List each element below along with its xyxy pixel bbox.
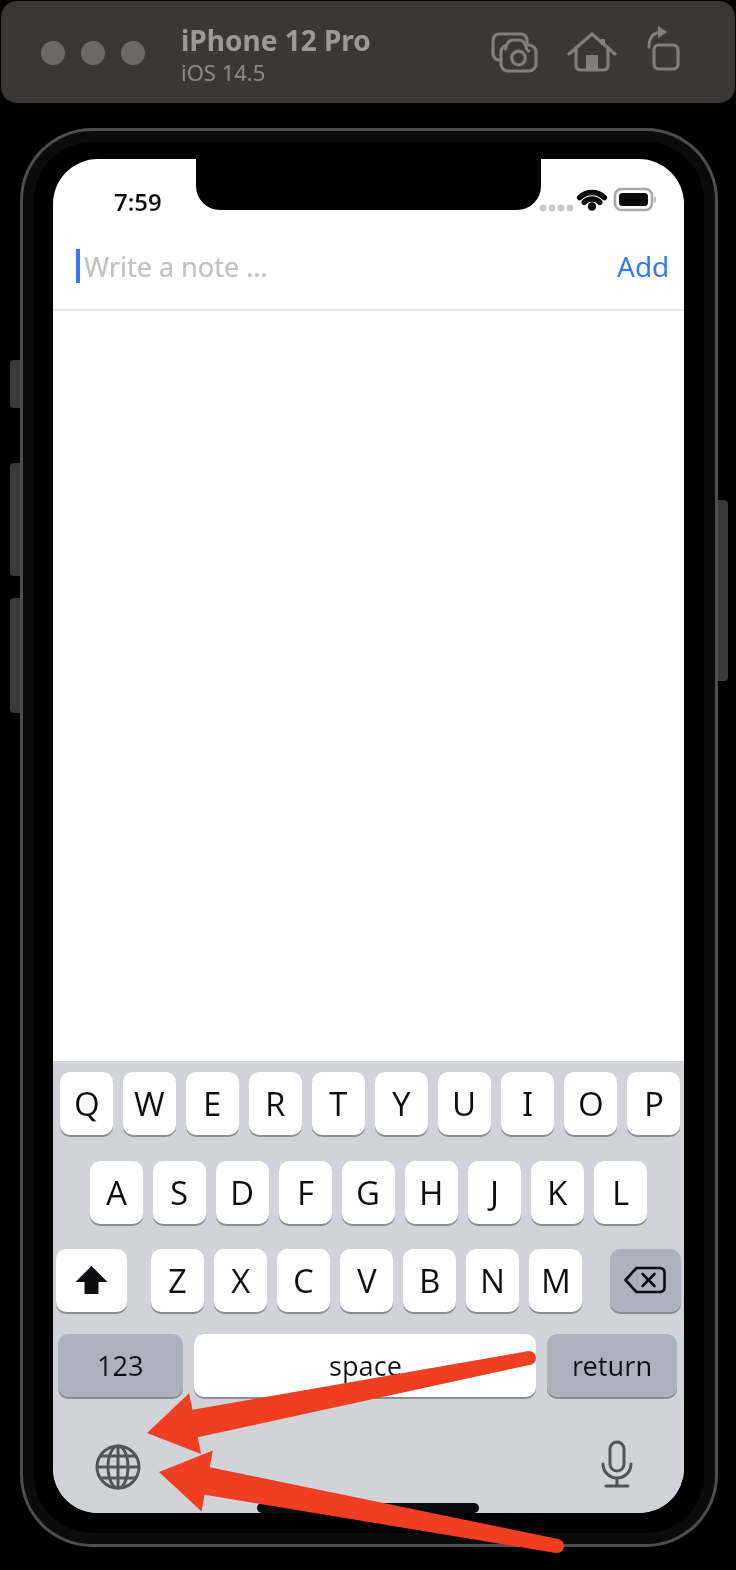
button[interactable]: X — [214, 1249, 267, 1312]
button[interactable]: W — [123, 1072, 176, 1135]
button[interactable] — [610, 1249, 681, 1312]
staticText: D — [230, 1170, 255, 1215]
staticText: 7:59 — [114, 185, 162, 213]
staticText: T — [329, 1081, 348, 1126]
staticText: Z — [168, 1258, 187, 1303]
staticText: return — [572, 1347, 653, 1384]
button[interactable] — [486, 27, 544, 79]
button[interactable] — [643, 27, 687, 79]
staticText: H — [419, 1170, 444, 1215]
button[interactable]: K — [531, 1161, 584, 1224]
staticText: 123 — [97, 1347, 144, 1384]
button[interactable]: N — [466, 1249, 519, 1312]
staticText: Add — [617, 247, 670, 285]
button[interactable]: G — [342, 1161, 395, 1224]
staticText: W — [134, 1081, 165, 1126]
staticText: iPhone 12 Pro — [181, 21, 371, 59]
button[interactable] — [93, 1442, 143, 1492]
button[interactable]: L — [594, 1161, 647, 1224]
button[interactable]: F — [279, 1161, 332, 1224]
staticText: L — [612, 1170, 630, 1215]
button[interactable] — [56, 1249, 127, 1312]
staticText: S — [170, 1170, 189, 1215]
button[interactable]: Y — [375, 1072, 428, 1135]
staticText: C — [293, 1258, 314, 1303]
button[interactable]: C — [277, 1249, 330, 1312]
button[interactable]: R — [249, 1072, 302, 1135]
button[interactable]: Q — [60, 1072, 113, 1135]
button[interactable]: H — [405, 1161, 458, 1224]
staticText: J — [490, 1170, 500, 1215]
staticText: P — [644, 1081, 664, 1126]
staticText: N — [480, 1258, 506, 1303]
staticText: K — [547, 1170, 568, 1215]
staticText: Write a note ... — [84, 248, 268, 285]
staticText: V — [357, 1258, 377, 1303]
staticText: Q — [74, 1081, 100, 1126]
staticText: A — [106, 1170, 128, 1215]
button[interactable]: return — [547, 1334, 677, 1397]
button[interactable]: D — [216, 1161, 269, 1224]
staticText: R — [265, 1081, 286, 1126]
button[interactable]: T — [312, 1072, 365, 1135]
button[interactable]: U — [438, 1072, 491, 1135]
staticText: Y — [392, 1081, 411, 1126]
button[interactable]: I — [501, 1072, 554, 1135]
button[interactable]: S — [153, 1161, 206, 1224]
staticText: X — [231, 1258, 251, 1303]
staticText: F — [297, 1170, 315, 1215]
button[interactable]: A — [90, 1161, 143, 1224]
button[interactable]: P — [627, 1072, 680, 1135]
button[interactable]: E — [186, 1072, 239, 1135]
button[interactable]: O — [564, 1072, 617, 1135]
button[interactable]: 123 — [58, 1334, 183, 1397]
button[interactable]: Z — [151, 1249, 204, 1312]
staticText: O — [578, 1081, 604, 1126]
staticText: M — [541, 1258, 571, 1303]
button[interactable] — [592, 1441, 642, 1491]
staticText: E — [203, 1081, 222, 1126]
button[interactable]: M — [529, 1249, 582, 1312]
staticText: G — [356, 1170, 381, 1215]
staticText: I — [522, 1081, 534, 1126]
button[interactable]: Add — [370, 245, 670, 287]
staticText: space — [329, 1347, 402, 1384]
staticText: iOS 14.5 — [181, 57, 266, 87]
staticText: B — [419, 1258, 441, 1303]
button[interactable] — [564, 27, 616, 79]
button[interactable]: V — [340, 1249, 393, 1312]
button[interactable]: J — [468, 1161, 521, 1224]
staticText: U — [452, 1081, 477, 1126]
button[interactable]: B — [403, 1249, 456, 1312]
button[interactable]: space — [194, 1334, 536, 1397]
